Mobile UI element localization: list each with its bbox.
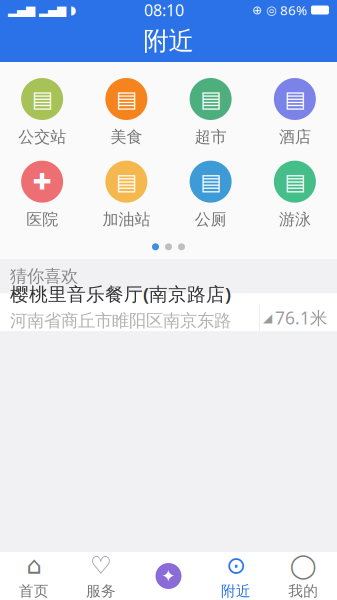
staticText: ◯: [290, 552, 317, 579]
button[interactable]: ▤: [84, 159, 168, 231]
staticText: 樱桃里音乐餐厅(南京路店): [10, 281, 231, 306]
staticText: 附近: [221, 582, 251, 600]
staticText: 超市: [195, 127, 227, 147]
staticText: 首页: [19, 582, 49, 600]
staticText: 医院: [26, 210, 58, 229]
staticText: 76.1米: [275, 306, 327, 329]
staticText: ⊕: [252, 3, 262, 17]
staticText: 08:10: [144, 0, 184, 21]
staticText: ⊙: [226, 552, 246, 579]
staticText: ▤: [284, 86, 305, 112]
staticText: ▤: [116, 86, 137, 112]
staticText: 单县羊汤馆: [10, 543, 105, 566]
staticText: 我的: [288, 582, 318, 600]
button[interactable]: ▤: [0, 76, 84, 149]
button[interactable]: ♡: [67, 552, 135, 600]
button[interactable]: ◯: [270, 552, 337, 600]
staticText: ✚: [33, 169, 52, 194]
staticText: 服务: [86, 582, 116, 600]
button[interactable]: 单县羊汤馆: [0, 543, 337, 593]
staticText: ✦: [161, 566, 176, 586]
staticText: ▤: [116, 169, 137, 194]
staticText: ◎: [266, 3, 276, 17]
staticText: ▂▄▆: [8, 3, 35, 17]
staticText: ▤: [32, 86, 53, 112]
button[interactable]: ⌂: [0, 552, 67, 600]
staticText: ▤: [200, 86, 221, 112]
staticText: ▤: [284, 169, 305, 194]
button[interactable]: 发现: [135, 552, 202, 600]
staticText: 附近: [143, 25, 193, 56]
staticText: 加油站: [102, 210, 150, 229]
staticText: 猜你喜欢: [10, 266, 78, 287]
button[interactable]: ▤: [168, 159, 253, 231]
button[interactable]: ▤: [253, 159, 337, 231]
button[interactable]: ✚: [0, 159, 84, 231]
button[interactable]: 樱桃里音乐餐厅(南京路店): [0, 293, 337, 343]
staticText: 酒店: [279, 127, 311, 147]
staticText: 河南省商丘市睢阳区南京东路133: [10, 310, 231, 354]
button[interactable]: ▤: [168, 76, 253, 149]
button[interactable]: ▤: [84, 76, 168, 149]
button[interactable]: ⊙: [202, 552, 270, 600]
staticText: 86%: [280, 1, 307, 19]
staticText: ⌂: [26, 552, 41, 579]
staticText: ▂▄▆: [39, 3, 66, 17]
staticText: 游泳: [279, 210, 311, 229]
staticText: 美食: [110, 127, 142, 147]
staticText: ◗: [70, 3, 76, 17]
staticText: 公厕: [195, 210, 227, 229]
staticText: 公交站: [18, 127, 66, 147]
staticText: ◢: [263, 311, 272, 325]
staticText: 河南省商丘市睢阳区…: [10, 570, 177, 593]
staticText: ♡: [90, 552, 112, 579]
staticText: ▤: [200, 169, 221, 194]
staticText: 164.8米: [265, 556, 327, 579]
button[interactable]: ▤: [253, 76, 337, 149]
